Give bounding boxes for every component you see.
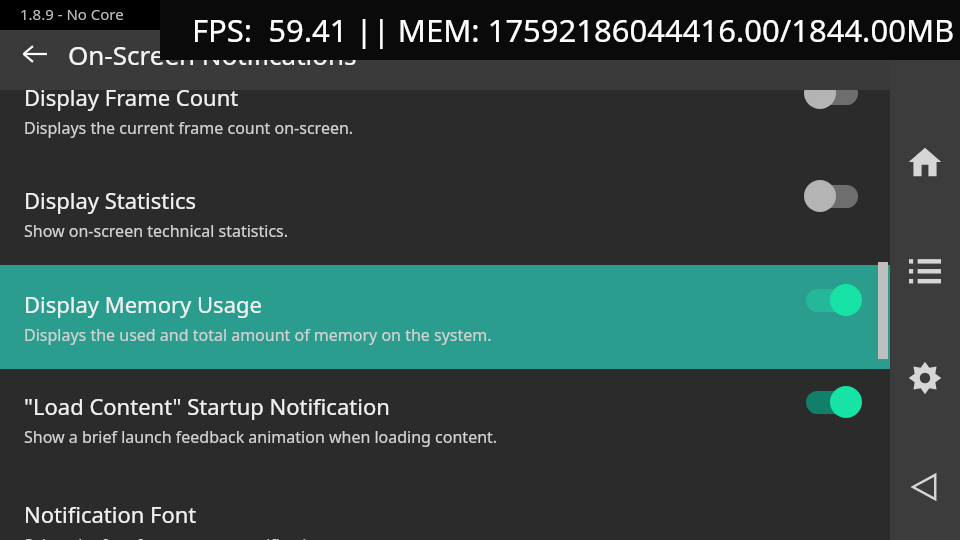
button[interactable]: Display Memory Usage (0, 265, 890, 369)
staticText: "Load Content" Startup Notification (24, 391, 390, 421)
button[interactable]: Display Memory Usage (804, 283, 862, 317)
button[interactable]: Display Frame Count (0, 0, 890, 165)
button[interactable]: Play (901, 12, 949, 60)
staticText: Display Statistics (24, 185, 196, 215)
staticText: On-Screen Notifications (68, 37, 357, 72)
staticText: Displays the used and total amount of me… (24, 324, 492, 346)
button[interactable]: Display Statistics (804, 179, 862, 213)
button[interactable]: Display Frame Count (804, 76, 862, 110)
button[interactable]: Back (896, 458, 954, 516)
button[interactable]: "Load Content" Startup Notification (0, 369, 890, 473)
staticText: Select the font for on-screen notificati… (24, 534, 339, 540)
staticText: Display Memory Usage (24, 289, 262, 319)
button[interactable]: Notification Font (0, 473, 890, 540)
staticText: Notification Font (24, 499, 197, 529)
button[interactable]: Home (896, 133, 954, 191)
staticText: 18-07 17:42 (808, 5, 884, 24)
button[interactable]: List (896, 241, 954, 299)
staticText: Display Frame Count (24, 82, 239, 112)
staticText: 1.8.9 - No Core (20, 4, 124, 24)
staticText: FPS: 59.41 || MEM: 17592186044416.00/184… (192, 9, 955, 51)
staticText: Show a brief launch feedback animation w… (24, 426, 498, 448)
button[interactable]: "Load Content" Startup Notification (804, 385, 862, 419)
staticText: Displays the current frame count on-scre… (24, 117, 354, 139)
button[interactable]: Back (14, 33, 56, 75)
button[interactable]: Display Statistics (0, 165, 890, 265)
staticText: Show on-screen technical statistics. (24, 220, 289, 242)
button[interactable]: Settings (896, 349, 954, 407)
staticText: 81% (904, 5, 932, 24)
